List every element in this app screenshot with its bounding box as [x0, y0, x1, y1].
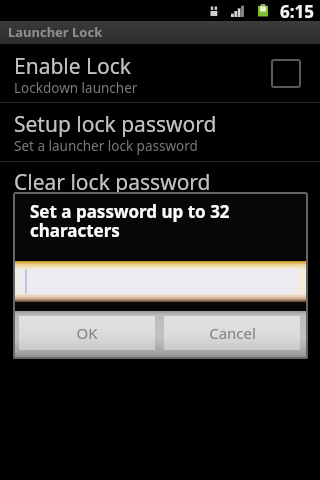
- button[interactable]: Enable Lock checkbox: [271, 59, 301, 88]
- staticText: Lockdown launcher: [14, 79, 138, 97]
- staticText: Setup lock password: [14, 110, 217, 139]
- staticText: 6:15: [280, 0, 314, 21]
- staticText: Cancel: [209, 323, 256, 343]
- button[interactable]: OK: [19, 316, 155, 350]
- staticText: Clear lock password: [14, 168, 211, 197]
- button[interactable]: Cancel: [164, 316, 300, 350]
- button[interactable]: Setup lock password: [0, 103, 320, 161]
- staticText: Enable Lock: [14, 52, 132, 81]
- staticText: OK: [76, 323, 98, 343]
- button[interactable]: Password input field: [13, 261, 308, 302]
- staticText: Set a launcher lock password: [14, 137, 198, 155]
- staticText: Clear launcher lock password: [14, 195, 200, 213]
- staticText: Launcher Lock: [8, 23, 103, 41]
- button[interactable]: Clear lock password: [0, 162, 320, 220]
- button[interactable]: Enable Lock: [0, 44, 320, 102]
- staticText: Set a password up to 32 characters: [30, 200, 286, 242]
